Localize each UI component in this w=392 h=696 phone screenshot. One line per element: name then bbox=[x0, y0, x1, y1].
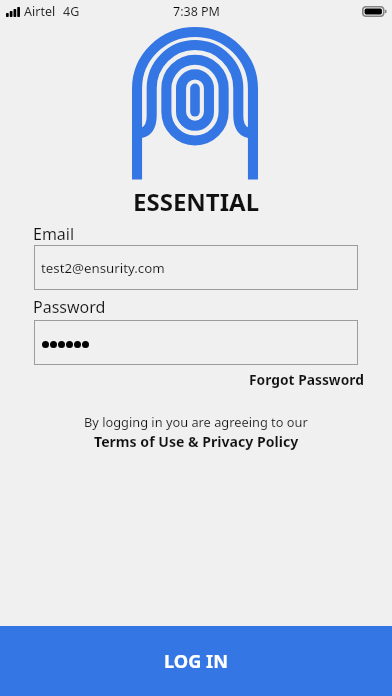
button[interactable] bbox=[34, 320, 358, 365]
staticText: LOG IN bbox=[164, 649, 228, 674]
staticText: Password bbox=[33, 296, 106, 318]
button[interactable]: test2@ensurity.com bbox=[34, 245, 358, 290]
staticText: ESSENTIAL bbox=[133, 185, 260, 218]
staticText: Email bbox=[33, 223, 75, 245]
button[interactable]: Forgot Password bbox=[249, 370, 364, 389]
staticText: Airtel bbox=[24, 3, 56, 20]
button[interactable]: Terms of Use & Privacy Policy bbox=[94, 432, 299, 451]
staticText: 4G bbox=[63, 3, 80, 20]
button[interactable]: LOG IN bbox=[0, 626, 392, 696]
staticText: test2@ensurity.com bbox=[41, 259, 165, 277]
other: Essential logo bbox=[132, 27, 258, 180]
staticText: By logging in you are agreeing to our bbox=[84, 413, 308, 430]
staticText: 7:38 PM bbox=[173, 3, 220, 20]
